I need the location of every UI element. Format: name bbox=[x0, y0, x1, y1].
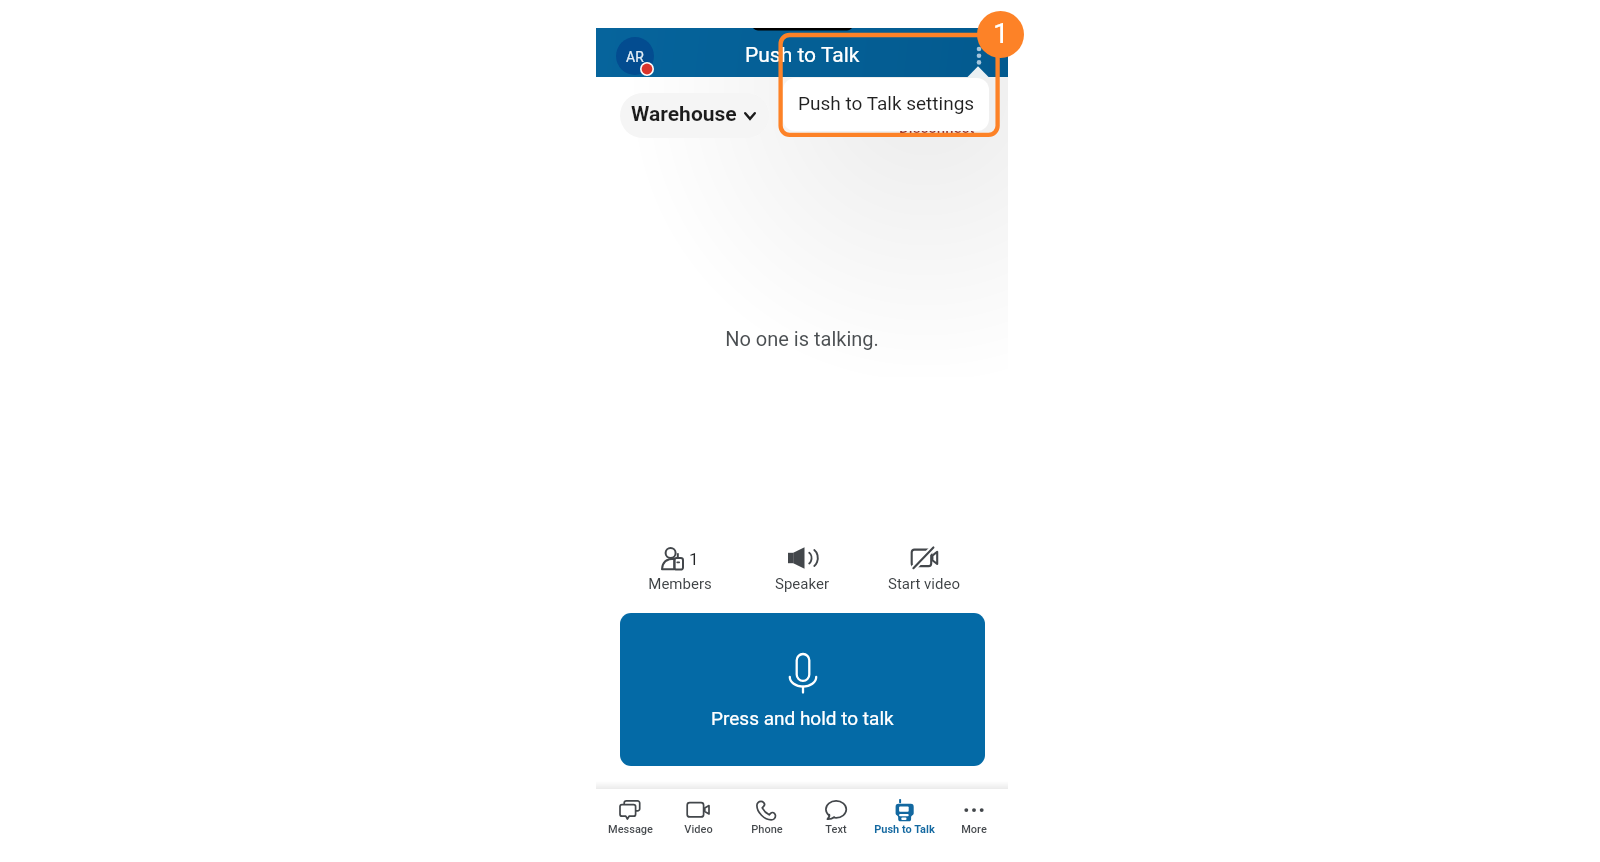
staticText: Message bbox=[608, 823, 653, 836]
staticText: 1 bbox=[993, 17, 1009, 50]
staticText: Press and hold to talk bbox=[711, 707, 894, 729]
button[interactable]: Message bbox=[596, 789, 664, 836]
button[interactable]: Video bbox=[664, 789, 732, 836]
staticText: AR bbox=[626, 49, 644, 65]
button[interactable]: Press and hold to talk bbox=[620, 613, 985, 766]
staticText: Phone bbox=[751, 823, 783, 836]
staticText: Speaker bbox=[775, 575, 829, 593]
staticText: Push to Talk settings bbox=[798, 92, 975, 114]
staticText: Start video bbox=[888, 575, 960, 593]
button[interactable]: More options bbox=[959, 28, 999, 77]
staticText: No one is talking. bbox=[596, 327, 1008, 350]
staticText: Members bbox=[648, 575, 712, 593]
staticText: Disconnect bbox=[899, 119, 975, 137]
staticText: More bbox=[961, 823, 987, 836]
staticText: Warehouse bbox=[631, 102, 737, 127]
button[interactable]: Phone bbox=[732, 789, 801, 836]
button[interactable]: 1 bbox=[620, 547, 740, 593]
button[interactable]: Profile bbox=[616, 37, 654, 75]
button[interactable]: Push to Talk settings bbox=[783, 78, 989, 131]
staticText: Video bbox=[684, 823, 713, 836]
staticText: 1 bbox=[689, 549, 699, 569]
button[interactable]: Speaker bbox=[742, 547, 862, 593]
button[interactable]: Start video bbox=[864, 547, 984, 593]
staticText: Text bbox=[825, 823, 847, 836]
button[interactable]: Push to Talk bbox=[870, 789, 939, 836]
staticText: Push to Talk bbox=[874, 823, 935, 836]
staticText: Push to Talk bbox=[745, 43, 860, 68]
button[interactable]: Warehouse bbox=[620, 93, 769, 138]
button[interactable]: Text bbox=[801, 789, 870, 836]
button[interactable]: More bbox=[939, 789, 1008, 836]
button[interactable]: Disconnect bbox=[864, 103, 1009, 148]
